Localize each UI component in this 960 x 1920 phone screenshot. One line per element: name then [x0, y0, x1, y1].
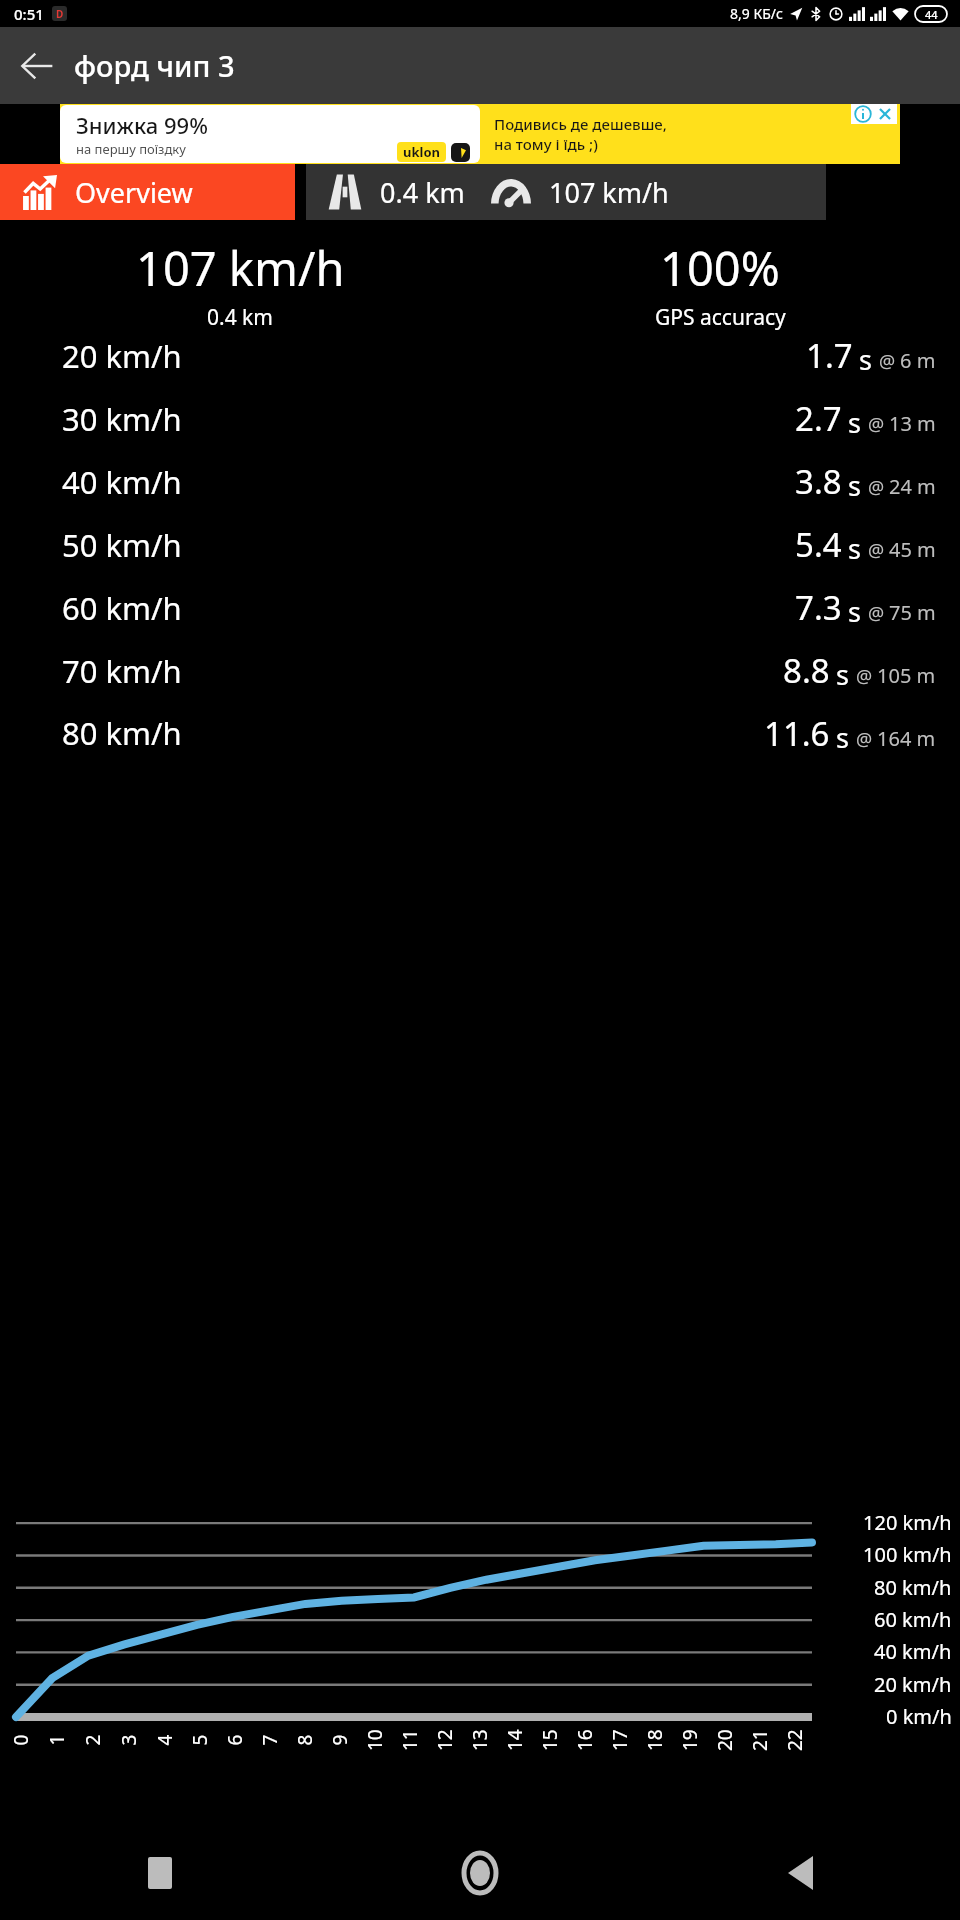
staticText: 20 km/h [62, 340, 182, 377]
staticText: 107 km/h [136, 236, 345, 300]
staticText: 105 m [877, 662, 936, 689]
staticText: 7 [256, 1734, 282, 1745]
staticText: s [836, 719, 849, 756]
staticText: на першу поїздку [76, 140, 186, 158]
button[interactable]: 20 km/h [0, 340, 960, 387]
button[interactable]: Home [320, 1825, 640, 1920]
staticText: 20 [712, 1729, 738, 1751]
staticText: 40 km/h [62, 461, 182, 503]
button[interactable]: 60 km/h [0, 576, 960, 639]
staticText: Знижка 99% [76, 110, 208, 140]
staticText: 80 km/h [62, 712, 182, 754]
staticText: D [56, 7, 64, 21]
button[interactable]: Close ad [876, 105, 894, 123]
staticText: 16 [572, 1729, 598, 1751]
staticText: 0 km/h [886, 1703, 952, 1730]
staticText: 8 [291, 1734, 317, 1745]
staticText: @ [868, 538, 885, 563]
staticText: 50 km/h [62, 524, 182, 566]
button[interactable]: Overview [0, 164, 295, 220]
button[interactable]: 40 km/h [0, 450, 960, 513]
staticText: @ [868, 601, 885, 626]
staticText: 120 km/h [863, 1509, 952, 1536]
staticText: 3 [115, 1734, 141, 1745]
staticText: 8,9 КБ/с [730, 4, 783, 23]
staticText: 44 [925, 7, 938, 22]
staticText: s [848, 467, 861, 504]
staticText: 15 [537, 1729, 563, 1751]
staticText: s [836, 656, 849, 693]
staticText: 13 [467, 1729, 493, 1751]
staticText: 4 [151, 1734, 177, 1745]
staticText: GPS accuracy [655, 303, 786, 332]
staticText: 2.7 [795, 396, 842, 441]
staticText: 3.8 [795, 459, 842, 504]
button[interactable]: Знижка 99% [60, 104, 900, 164]
staticText: 100% [660, 236, 780, 300]
staticText: 1 [43, 1734, 69, 1745]
staticText: uklon [403, 143, 440, 161]
staticText: s [848, 530, 861, 567]
button[interactable]: Ad info [854, 105, 872, 123]
staticText: 40 km/h [874, 1638, 952, 1665]
staticText: 8.8 [783, 648, 830, 693]
staticText: 6 [221, 1734, 247, 1745]
button[interactable]: Back [0, 29, 74, 103]
staticText: 0.4 km [380, 174, 465, 211]
staticText: 0.4 km [207, 303, 273, 332]
staticText: 80 km/h [874, 1574, 952, 1601]
staticText: 5.4 [795, 522, 842, 567]
staticText: s [848, 593, 861, 630]
staticText: 1.7 [806, 340, 853, 378]
staticText: 9 [326, 1734, 352, 1745]
staticText: s [848, 404, 861, 441]
staticText: @ [879, 349, 896, 374]
button[interactable]: Recent apps [0, 1825, 320, 1920]
staticText: 60 km/h [62, 587, 182, 629]
staticText: 5 [186, 1734, 212, 1745]
staticText: 7.3 [795, 585, 842, 630]
button[interactable]: Back [640, 1825, 960, 1920]
staticText: 18 [642, 1729, 668, 1751]
staticText: 22 [782, 1729, 808, 1751]
staticText: 10 [362, 1729, 388, 1751]
staticText: @ [868, 475, 885, 500]
staticText: @ [856, 664, 873, 689]
staticText: 11.6 [764, 711, 830, 756]
staticText: 24 m [889, 473, 936, 500]
staticText: 30 km/h [62, 398, 182, 440]
staticText: 6 m [900, 347, 936, 374]
staticText: 14 [502, 1729, 528, 1751]
staticText: 70 km/h [62, 650, 182, 692]
staticText: 11 [397, 1729, 423, 1751]
staticText: 17 [607, 1729, 633, 1751]
staticText: 21 [747, 1729, 773, 1751]
staticText: 75 m [889, 599, 936, 626]
staticText: 107 km/h [549, 174, 669, 211]
button[interactable]: 80 km/h [0, 702, 960, 764]
staticText: 12 [432, 1729, 458, 1751]
button[interactable]: 70 km/h [0, 639, 960, 702]
staticText: Подивись де дешевше, [494, 114, 667, 134]
staticText: 100 km/h [863, 1541, 952, 1568]
staticText: Overview [75, 174, 193, 211]
staticText: 45 m [889, 536, 936, 563]
staticText: 19 [677, 1729, 703, 1751]
staticText: 20 km/h [874, 1671, 952, 1698]
button[interactable]: 30 km/h [0, 387, 960, 450]
staticText: 164 m [877, 725, 936, 752]
button[interactable]: 50 km/h [0, 513, 960, 576]
staticText: s [859, 341, 872, 378]
staticText: 2 [79, 1734, 105, 1745]
staticText: @ [856, 727, 873, 752]
staticText: 0 [7, 1734, 33, 1745]
staticText: 0:51 [14, 4, 44, 24]
staticText: 60 km/h [874, 1606, 952, 1633]
staticText: на тому і їдь ;) [494, 134, 598, 154]
staticText: 13 m [889, 410, 936, 437]
staticText: @ [868, 412, 885, 437]
staticText: форд чип 3 [74, 46, 235, 85]
button[interactable]: 0.4 km [306, 164, 826, 220]
